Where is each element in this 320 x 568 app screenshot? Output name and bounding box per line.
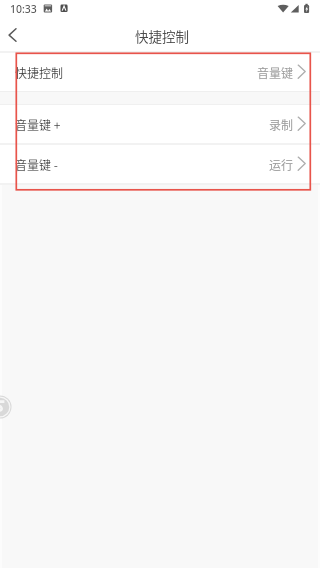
button[interactable]: 音量键 - — [0, 145, 320, 183]
staticText: 音量键 — [257, 64, 294, 81]
staticText: 快捷控制 — [15, 64, 64, 81]
staticText: 音量键 + — [15, 116, 61, 133]
button[interactable]: Back — [0, 21, 30, 51]
staticText: 运行 — [269, 156, 294, 173]
staticText: 10:33 — [10, 2, 37, 16]
staticText: 音量键 - — [15, 156, 58, 173]
button[interactable]: 音量键 + — [0, 105, 320, 143]
staticText: 快捷控制 — [135, 26, 189, 46]
staticText: 录制 — [269, 116, 294, 133]
button[interactable]: 快捷控制 — [0, 53, 320, 91]
